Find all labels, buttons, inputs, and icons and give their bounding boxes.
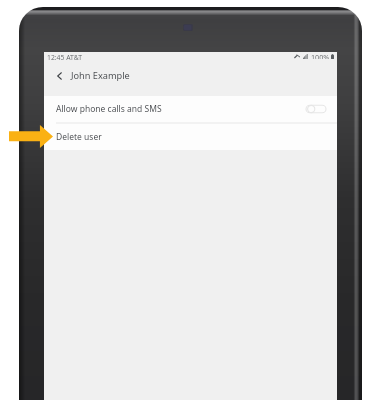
staticText: 12:45 AT&T [47, 53, 82, 62]
button[interactable]: Allow phone calls and SMS [44, 96, 337, 122]
staticText: 100% [311, 52, 330, 59]
button[interactable]: Allow phone calls and SMS toggle [306, 104, 326, 114]
button[interactable]: Back [49, 65, 70, 86]
staticText: John Example [71, 69, 130, 82]
button[interactable]: Delete user [44, 124, 337, 150]
staticText: Allow phone calls and SMS [56, 103, 162, 115]
staticText: Delete user [56, 131, 102, 143]
